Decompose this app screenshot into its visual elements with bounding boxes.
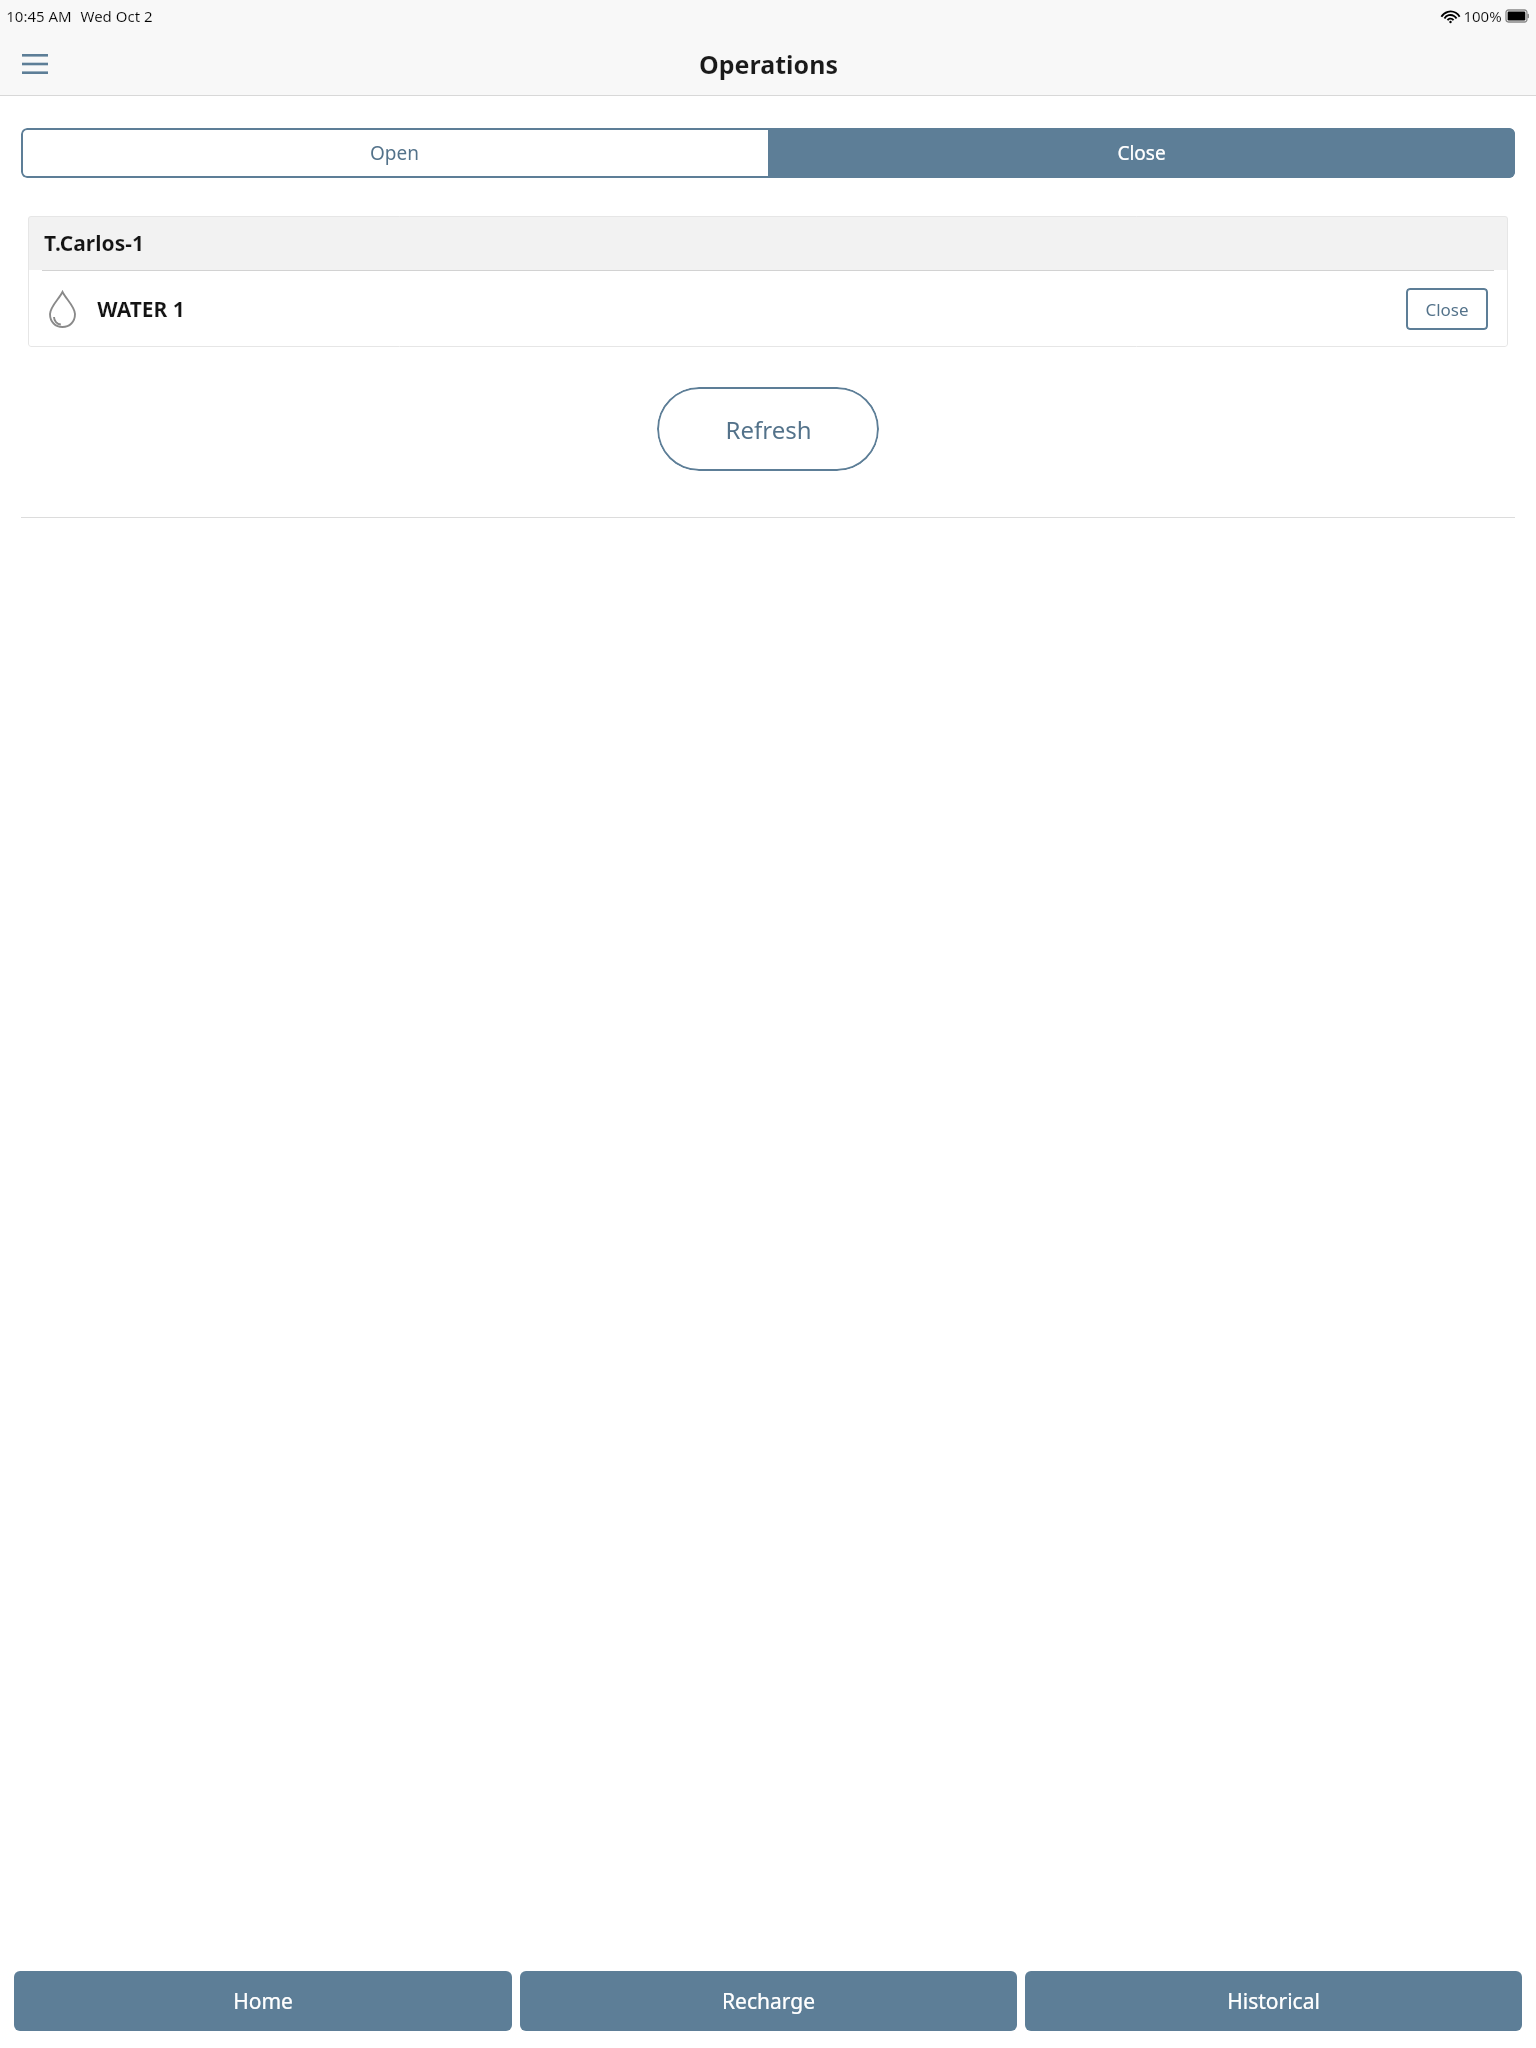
button[interactable]: Open [21, 128, 768, 178]
button[interactable]: Recharge [520, 1971, 1017, 2031]
staticText: 10:45 AM [6, 6, 72, 26]
staticText: Refresh [725, 413, 812, 446]
staticText: Historical [1227, 1987, 1320, 2016]
staticText: WATER 1 [97, 295, 185, 324]
button[interactable]: Historical [1025, 1971, 1522, 2031]
staticText: Recharge [722, 1987, 815, 2016]
staticText: Operations [699, 47, 838, 81]
staticText: 100% [1463, 6, 1502, 26]
button[interactable]: Refresh [657, 387, 879, 471]
button[interactable]: Close [768, 128, 1515, 178]
button[interactable]: Close [1406, 288, 1488, 330]
button[interactable]: Menu [14, 43, 56, 85]
staticText: Close [1425, 298, 1469, 321]
staticText: Wed Oct 2 [80, 6, 153, 26]
staticText: Open [370, 140, 419, 166]
staticText: T.Carlos-1 [44, 229, 144, 258]
button[interactable]: WATER 1 [28, 271, 1508, 347]
staticText: Close [1117, 140, 1166, 166]
button[interactable]: Home [14, 1971, 512, 2031]
staticText: Home [233, 1987, 293, 2016]
